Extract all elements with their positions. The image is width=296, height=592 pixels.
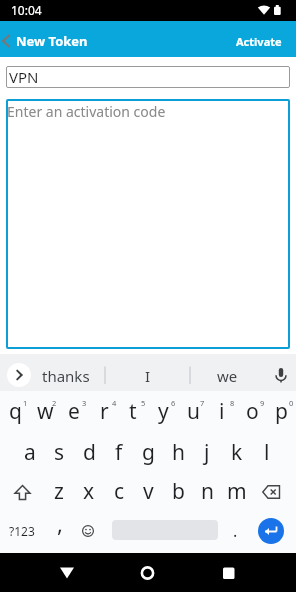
staticText: b — [172, 477, 185, 506]
button[interactable]: c — [104, 471, 134, 511]
staticText: k — [231, 438, 243, 467]
button[interactable] — [98, 553, 197, 592]
staticText: e — [68, 397, 80, 426]
button[interactable] — [0, 472, 40, 512]
staticText: a — [24, 438, 36, 467]
staticText: n — [201, 477, 214, 506]
staticText: VPN — [9, 67, 39, 87]
button[interactable]: o — [237, 391, 267, 431]
staticText: j — [204, 438, 210, 467]
staticText: New Token — [16, 32, 88, 50]
staticText: Activate — [236, 34, 282, 49]
button[interactable]: . — [225, 511, 245, 551]
staticText: 9 — [260, 398, 265, 408]
staticText: z — [54, 477, 64, 506]
staticText: v — [143, 477, 154, 506]
staticText: c — [114, 477, 125, 506]
staticText: . — [233, 520, 238, 542]
button[interactable]: thanks — [26, 357, 106, 394]
staticText: , — [57, 508, 63, 538]
button[interactable]: New Token — [0, 32, 88, 50]
staticText: 6 — [171, 398, 176, 408]
button[interactable]: b — [163, 471, 193, 511]
button[interactable]: , — [46, 503, 74, 543]
button[interactable]: we — [187, 357, 267, 394]
button[interactable]: Enter an activation code — [6, 99, 290, 349]
button[interactable]: a — [15, 432, 45, 472]
staticText: we — [217, 366, 238, 386]
button[interactable]: w — [30, 391, 60, 431]
button[interactable]: l — [252, 432, 282, 472]
button[interactable]: VPN — [6, 66, 290, 88]
staticText: y — [158, 397, 169, 426]
staticText: w — [37, 397, 54, 426]
button[interactable]: ?123 — [2, 511, 42, 551]
button[interactable]: u — [178, 391, 208, 431]
button[interactable]: j — [192, 432, 222, 472]
button[interactable]: t — [118, 391, 148, 431]
button[interactable]: y — [148, 391, 178, 431]
staticText: r — [100, 397, 109, 426]
button[interactable]: k — [222, 432, 252, 472]
button[interactable]: h — [163, 432, 193, 472]
staticText: ?123 — [9, 523, 35, 539]
staticText: Enter an activation code — [7, 102, 166, 121]
staticText: l — [264, 438, 270, 467]
button[interactable]: Activate — [236, 34, 296, 49]
button[interactable] — [256, 472, 296, 512]
staticText: 3 — [82, 398, 87, 408]
button[interactable]: I — [108, 357, 188, 394]
button[interactable]: s — [44, 432, 74, 472]
button[interactable]: z — [44, 471, 74, 511]
button[interactable]: i — [207, 391, 237, 431]
staticText: s — [54, 438, 65, 467]
staticText: o — [246, 397, 259, 426]
button[interactable] — [7, 363, 31, 387]
staticText: x — [83, 477, 95, 506]
staticText: p — [275, 397, 288, 426]
staticText: m — [227, 477, 247, 506]
button[interactable]: q — [0, 391, 30, 431]
staticText: d — [83, 438, 96, 467]
staticText: u — [187, 397, 200, 426]
staticText: 4 — [112, 398, 117, 408]
button[interactable]: p — [266, 391, 296, 431]
staticText: i — [219, 397, 225, 426]
staticText: 10:04 — [11, 2, 42, 18]
button[interactable] — [266, 358, 296, 388]
button[interactable]: m — [222, 471, 252, 511]
staticText: I — [145, 366, 151, 386]
button[interactable]: d — [74, 432, 104, 472]
button[interactable] — [0, 34, 14, 48]
staticText: h — [172, 438, 185, 467]
button[interactable]: v — [133, 471, 163, 511]
button[interactable]: f — [104, 432, 134, 472]
button[interactable] — [74, 512, 102, 552]
button[interactable]: e — [59, 391, 89, 431]
button[interactable]: x — [74, 471, 104, 511]
button[interactable]: n — [192, 471, 222, 511]
button[interactable]: g — [133, 432, 163, 472]
staticText: t — [129, 397, 137, 426]
button[interactable] — [0, 553, 98, 592]
staticText: q — [9, 397, 22, 426]
staticText: 5 — [141, 398, 146, 408]
staticText: f — [115, 438, 123, 467]
staticText: 0 — [289, 398, 294, 408]
staticText: 1 — [23, 398, 28, 408]
button[interactable] — [197, 553, 296, 592]
staticText: thanks — [42, 366, 90, 386]
staticText: 8 — [230, 398, 235, 408]
staticText: 7 — [200, 398, 205, 408]
button[interactable] — [258, 518, 284, 544]
staticText: g — [142, 438, 155, 467]
button[interactable]: r — [89, 391, 119, 431]
staticText: 2 — [52, 398, 57, 408]
